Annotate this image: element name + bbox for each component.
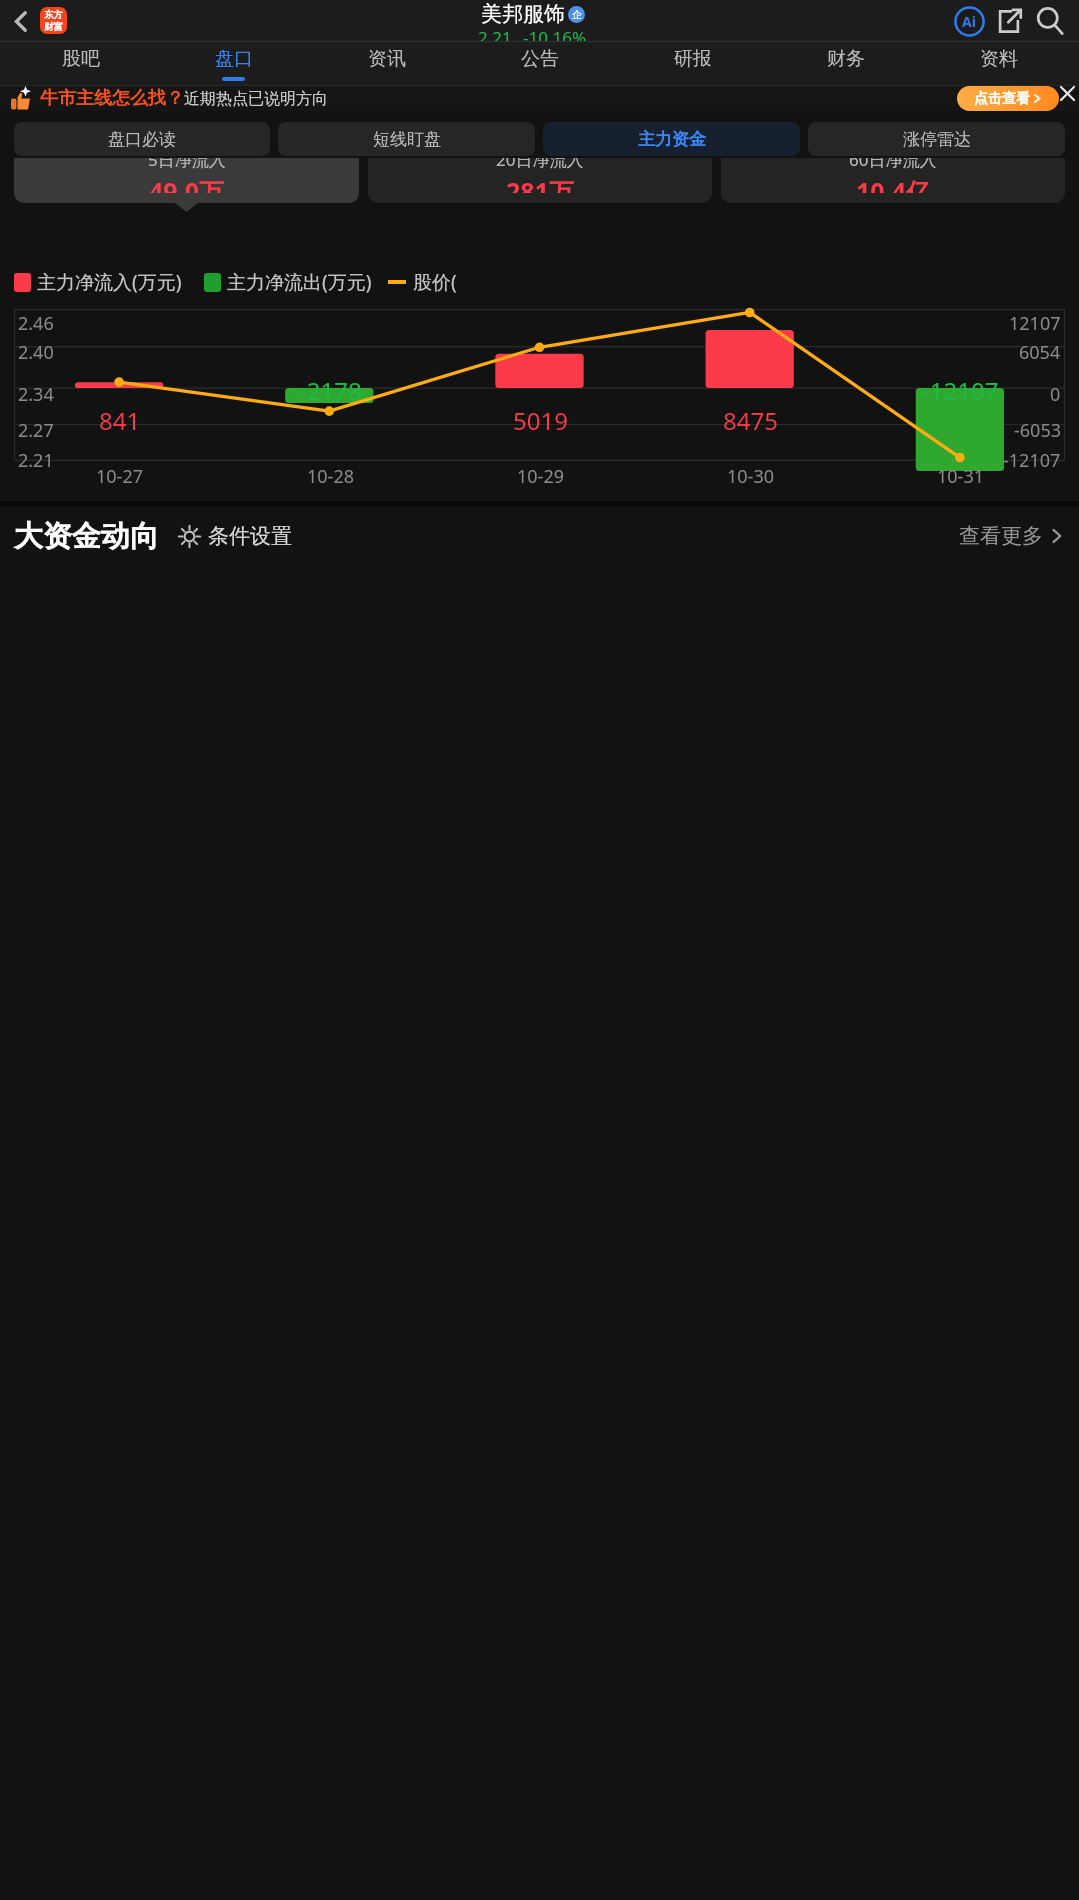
- staticText: 企: [572, 8, 582, 21]
- button[interactable]: 条件设置: [178, 523, 292, 549]
- staticText: 主力资金: [638, 129, 706, 150]
- staticText: 10-29: [517, 464, 564, 489]
- button[interactable]: Back: [4, 4, 38, 38]
- button[interactable]: East Money home: [40, 7, 67, 34]
- button[interactable]: 资讯: [310, 42, 463, 85]
- staticText: -10.16%: [523, 26, 587, 41]
- button[interactable]: 资料: [922, 42, 1075, 85]
- staticText: 资讯: [368, 47, 406, 71]
- staticText: 10-27: [96, 464, 143, 489]
- staticText: 涨停雷达: [903, 129, 971, 150]
- staticText: Ai: [962, 12, 976, 31]
- staticText: 49.0万: [149, 174, 224, 193]
- staticText: 条件设置: [208, 523, 292, 549]
- button[interactable]: Close banner: [1055, 81, 1079, 105]
- staticText: 10.4亿: [856, 174, 931, 193]
- button[interactable]: 短线盯盘: [278, 122, 535, 156]
- button[interactable]: AI assistant: [949, 1, 989, 41]
- staticText: 财富: [44, 21, 63, 33]
- staticText: 5019: [513, 404, 568, 437]
- staticText: -2178: [299, 374, 362, 407]
- button[interactable]: 主力资金: [543, 122, 800, 156]
- staticText: 主力净流入(万元): [37, 269, 182, 295]
- staticText: 股价(: [413, 269, 457, 295]
- staticText: 股吧: [62, 47, 100, 71]
- staticText: 盘口必读: [108, 129, 176, 150]
- staticText: 10-31: [937, 464, 984, 489]
- staticText: 2.40: [18, 340, 54, 365]
- staticText: 2.21: [18, 448, 54, 473]
- button[interactable]: 盘口必读: [14, 122, 270, 156]
- staticText: 281万: [506, 174, 574, 193]
- staticText: 查看更多: [959, 523, 1043, 549]
- button[interactable]: 5日净流入: [14, 158, 359, 203]
- button[interactable]: 涨停雷达: [808, 122, 1065, 156]
- staticText: 财务: [827, 47, 865, 71]
- staticText: 牛市主线怎么找？: [40, 87, 184, 110]
- staticText: 公告: [521, 47, 559, 71]
- staticText: 0: [1050, 382, 1061, 407]
- staticText: 841: [99, 404, 141, 437]
- button[interactable]: 股吧: [4, 42, 157, 85]
- staticText: 美邦服饰: [481, 1, 565, 27]
- button[interactable]: Search: [1029, 0, 1071, 41]
- staticText: 20日净流入: [496, 158, 584, 171]
- button[interactable]: 查看更多: [959, 523, 1065, 549]
- staticText: 2.21: [478, 26, 512, 41]
- staticText: 研报: [674, 47, 712, 71]
- staticText: 盘口: [215, 47, 253, 71]
- staticText: 6054: [1019, 340, 1061, 365]
- staticText: -12107: [922, 374, 999, 407]
- staticText: 10-28: [307, 464, 354, 489]
- staticText: 2.46: [18, 311, 54, 336]
- staticText: 大资金动向: [14, 518, 159, 555]
- staticText: 主力净流出(万元): [227, 269, 372, 295]
- staticText: 12107: [1009, 311, 1061, 336]
- button[interactable]: 研报: [616, 42, 769, 85]
- staticText: 5日净流入: [148, 158, 226, 171]
- staticText: 近期热点已说明方向: [184, 89, 328, 109]
- staticText: 短线盯盘: [373, 129, 441, 150]
- staticText: 东方: [44, 9, 63, 21]
- staticText: 点击查看: [974, 90, 1030, 108]
- button[interactable]: 财务: [769, 42, 922, 85]
- button[interactable]: 20日净流入: [368, 158, 712, 203]
- staticText: 60日净流入: [849, 158, 937, 171]
- staticText: 2.27: [18, 418, 54, 443]
- button[interactable]: Share: [989, 1, 1029, 41]
- button[interactable]: 盘口: [157, 42, 310, 85]
- staticText: 8475: [723, 404, 778, 437]
- staticText: -6053: [1014, 418, 1061, 443]
- staticText: 2.34: [18, 382, 54, 407]
- staticText: 10-30: [727, 464, 774, 489]
- staticText: 资料: [980, 47, 1018, 71]
- button[interactable]: 点击查看: [957, 86, 1059, 111]
- staticText: -12107: [1003, 448, 1061, 473]
- button[interactable]: 60日净流入: [721, 158, 1065, 203]
- button[interactable]: 公告: [463, 42, 616, 85]
